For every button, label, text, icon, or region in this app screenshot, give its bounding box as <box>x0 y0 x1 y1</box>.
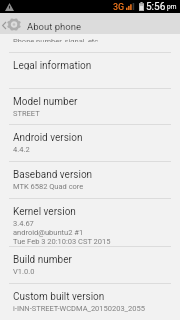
staticText: Custom built version <box>13 291 105 301</box>
button[interactable]: Custom built version <box>0 284 180 320</box>
button[interactable]: Baseband version <box>0 162 180 198</box>
staticText: Model number <box>13 96 78 106</box>
staticText: Tue Feb 3 20:10:03 CST 2015 <box>13 237 111 246</box>
button[interactable]: Android version <box>0 125 180 161</box>
staticText: V1.0.0 <box>13 267 35 276</box>
staticText: Kernel version <box>13 206 76 216</box>
button[interactable]: Model number <box>0 89 180 124</box>
button[interactable]: Navigate up to Settings <box>0 13 24 34</box>
staticText: About phone <box>27 21 81 32</box>
button[interactable]: Legal information <box>0 53 180 88</box>
staticText: MTK 6582 Quad core <box>13 182 84 191</box>
staticText: i-INN-STREET-WCDMA_20150203_2055 <box>13 304 145 313</box>
staticText: Baseband version <box>13 169 93 179</box>
staticText: 4.4.2 <box>13 145 30 154</box>
staticText: Phone number, signal, etc. <box>13 37 101 42</box>
staticText: 5:56 <box>146 1 166 13</box>
staticText: android@ubuntu2 #1 <box>13 228 84 237</box>
button[interactable]: Build number <box>0 247 180 283</box>
staticText: 3G <box>113 2 125 13</box>
staticText: STREET <box>13 109 40 118</box>
button[interactable]: Kernel version <box>0 199 180 246</box>
staticText: Build number <box>13 254 72 264</box>
staticText: Android version <box>13 132 83 142</box>
staticText: Legal information <box>13 60 92 70</box>
staticText: 3.4.67 <box>13 219 34 228</box>
staticText: pm <box>167 3 177 11</box>
